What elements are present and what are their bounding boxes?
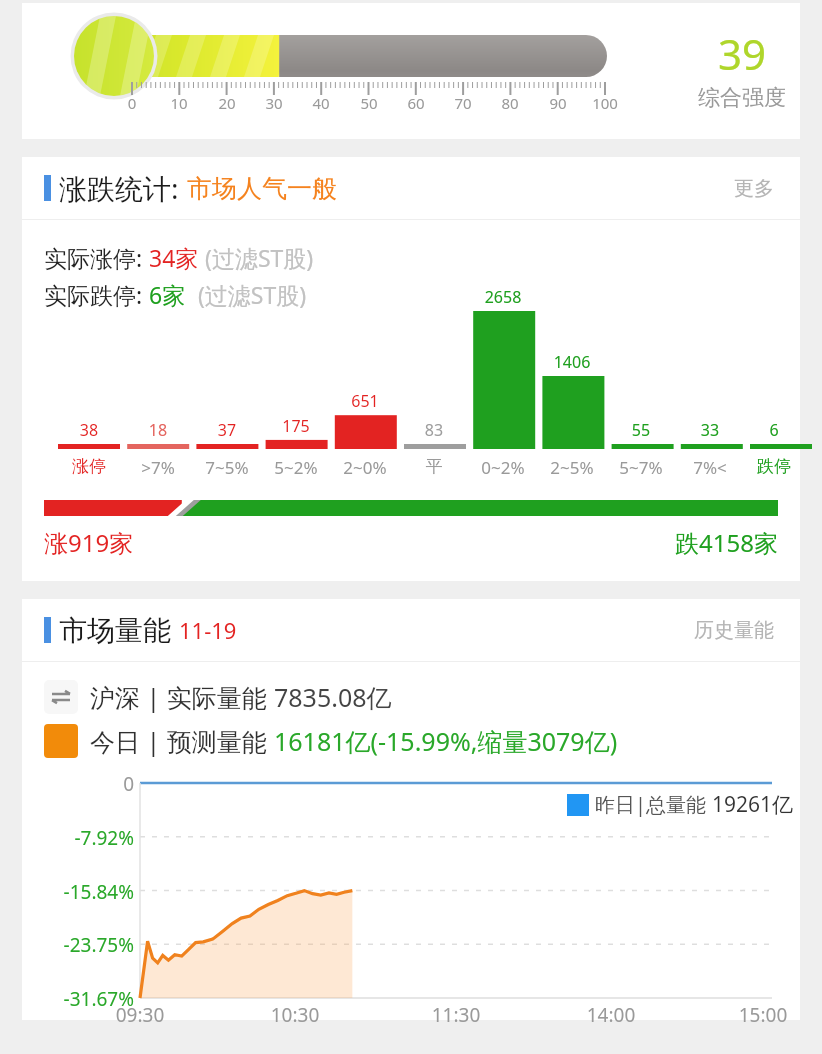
staticText: 175 bbox=[265, 415, 327, 437]
staticText: 7%< bbox=[679, 456, 741, 479]
staticText: 市场量能 bbox=[59, 613, 171, 648]
staticText: 30 bbox=[256, 93, 292, 113]
staticText: 6 bbox=[748, 419, 800, 441]
staticText: 11-19 bbox=[179, 615, 237, 645]
staticText: 跌4158家 bbox=[675, 526, 778, 559]
staticText: 5~7% bbox=[610, 456, 672, 479]
staticText: 6家 bbox=[149, 279, 186, 310]
staticText: 1406 bbox=[541, 351, 603, 373]
staticText: (过滤ST股) bbox=[199, 242, 314, 273]
staticText: 更多 bbox=[734, 176, 774, 201]
staticText: 83 bbox=[403, 419, 465, 441]
staticText: 100 bbox=[587, 93, 623, 113]
staticText: 651 bbox=[334, 390, 396, 412]
button[interactable]: 切换市场 bbox=[44, 680, 78, 714]
staticText: 市场人气一般 bbox=[187, 173, 337, 204]
staticText: 60 bbox=[398, 93, 434, 113]
staticText: 15:00 bbox=[727, 1002, 799, 1028]
staticText: 11:30 bbox=[420, 1002, 492, 1028]
staticText: 33 bbox=[679, 419, 741, 441]
staticText: 34家 bbox=[149, 242, 199, 273]
staticText: 综合强度 bbox=[698, 84, 786, 112]
staticText: -7.92% bbox=[22, 825, 134, 851]
staticText: >7% bbox=[127, 456, 189, 479]
staticText: -15.84% bbox=[22, 879, 134, 905]
staticText: 90 bbox=[540, 93, 576, 113]
staticText: 实际涨停: bbox=[44, 242, 149, 273]
staticText: 40 bbox=[303, 93, 339, 113]
staticText: 38 bbox=[58, 419, 120, 441]
staticText: (过滤ST股) bbox=[186, 279, 307, 310]
staticText: 0~2% bbox=[472, 456, 534, 479]
staticText: 今日 | 预测量能 bbox=[90, 724, 274, 758]
staticText: 09:30 bbox=[104, 1002, 176, 1028]
staticText: 沪深 | 实际量能 bbox=[90, 680, 274, 714]
staticText: 2658 bbox=[472, 286, 534, 308]
staticText: 55 bbox=[610, 419, 672, 441]
staticText: 0 bbox=[114, 93, 150, 113]
staticText: 跌停 bbox=[748, 456, 800, 477]
staticText: 37 bbox=[196, 419, 258, 441]
staticText: 5~2% bbox=[265, 456, 327, 479]
staticText: 39 bbox=[718, 25, 767, 82]
staticText: 10:30 bbox=[259, 1002, 331, 1028]
staticText: 16181亿(-15.99%,缩量3079亿) bbox=[274, 724, 618, 758]
staticText: -31.67% bbox=[22, 986, 134, 1012]
button[interactable]: 更多 bbox=[730, 170, 778, 207]
staticText: 19261亿 bbox=[712, 790, 794, 819]
staticText: 历史量能 bbox=[694, 618, 774, 643]
staticText: 涨919家 bbox=[44, 526, 134, 559]
staticText: 2~0% bbox=[334, 456, 396, 479]
staticText: 平 bbox=[403, 456, 465, 477]
staticText: 20 bbox=[209, 93, 245, 113]
staticText: 10 bbox=[161, 93, 197, 113]
staticText: -23.75% bbox=[22, 932, 134, 958]
staticText: 80 bbox=[492, 93, 528, 113]
staticText: 涨跌统计: bbox=[59, 169, 179, 207]
staticText: 0 bbox=[22, 771, 134, 797]
staticText: 昨日|总量能 bbox=[595, 791, 712, 818]
staticText: 70 bbox=[445, 93, 481, 113]
staticText: 14:00 bbox=[575, 1002, 647, 1028]
button[interactable]: 0 bbox=[22, 3, 800, 139]
staticText: 实际跌停: bbox=[44, 279, 149, 310]
staticText: 涨停 bbox=[58, 456, 120, 477]
button[interactable]: 历史量能 bbox=[690, 612, 778, 649]
staticText: 50 bbox=[351, 93, 387, 113]
staticText: 18 bbox=[127, 419, 189, 441]
staticText: 7~5% bbox=[196, 456, 258, 479]
staticText: 7835.08亿 bbox=[274, 680, 392, 714]
staticText: 2~5% bbox=[541, 456, 603, 479]
